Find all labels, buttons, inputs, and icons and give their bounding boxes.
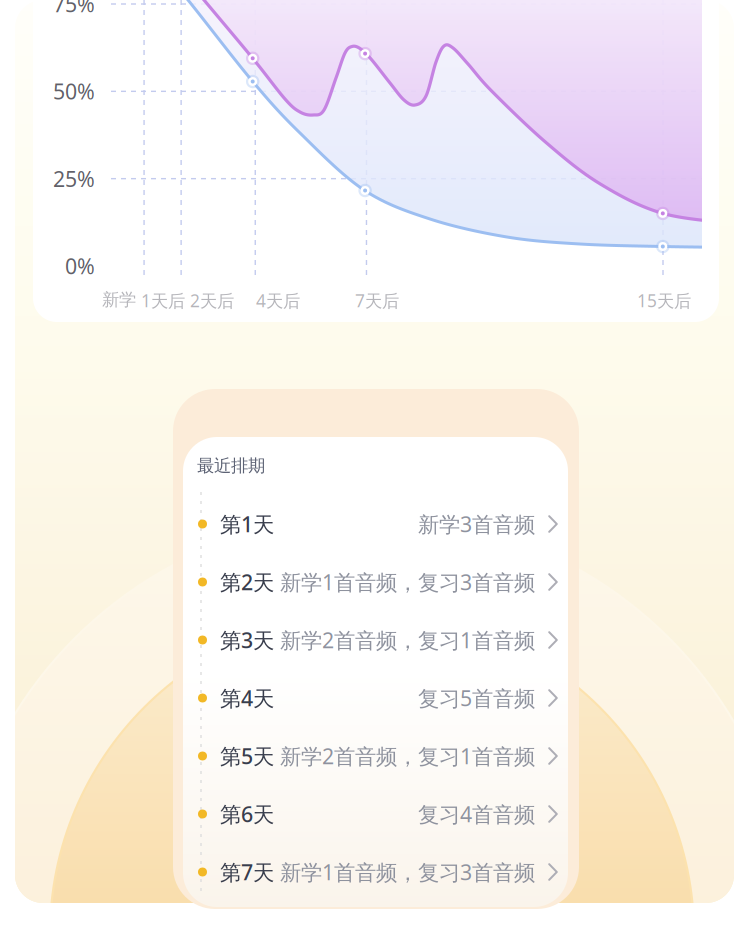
staticText: 1天后: [141, 289, 185, 312]
staticText: 0%: [65, 252, 95, 280]
button[interactable]: 第1天: [183, 495, 568, 553]
staticText: 复习4首音频: [418, 800, 535, 828]
staticText: 复习5首音频: [418, 684, 535, 712]
staticText: 新学: [102, 289, 136, 310]
staticText: 第3天: [220, 626, 274, 654]
button[interactable]: 第4天: [183, 669, 568, 727]
staticText: 第6天: [220, 800, 274, 828]
button[interactable]: 第5天: [183, 727, 568, 785]
staticText: 第2天: [220, 568, 274, 596]
button[interactable]: 第2天: [183, 553, 568, 611]
button[interactable]: 第7天: [183, 843, 568, 901]
staticText: 第1天: [220, 510, 274, 538]
staticText: 4天后: [256, 289, 300, 312]
button[interactable]: 第3天: [183, 611, 568, 669]
button[interactable]: 第6天: [183, 785, 568, 843]
staticText: 7天后: [355, 289, 399, 312]
staticText: 75%: [53, 0, 95, 18]
staticText: 2天后: [190, 289, 234, 312]
staticText: 最近排期: [197, 455, 265, 476]
staticText: 25%: [53, 164, 95, 193]
staticText: 新学2首音频，复习1首音频: [280, 626, 535, 654]
staticText: 50%: [53, 77, 95, 105]
staticText: 第5天: [220, 742, 274, 770]
staticText: 新学3首音频: [418, 510, 535, 538]
staticText: 新学1首音频，复习3首音频: [280, 858, 535, 886]
staticText: 第7天: [220, 858, 274, 886]
staticText: 15天后: [637, 289, 691, 312]
staticText: 第4天: [220, 684, 274, 712]
staticText: 新学1首音频，复习3首音频: [280, 568, 535, 596]
staticText: 新学2首音频，复习1首音频: [280, 742, 535, 770]
